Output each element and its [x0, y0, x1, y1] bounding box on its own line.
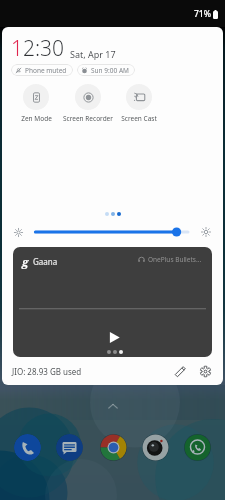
staticText: 2:30: [23, 34, 65, 63]
staticText: JIO: 28.93 GB used: [12, 366, 82, 377]
staticText: OnePlus Bullets...: [148, 255, 202, 264]
staticText: 71%: [194, 8, 211, 20]
button[interactable]: Zen Mode: [10, 84, 62, 123]
button[interactable]: Phone muted: [11, 64, 73, 76]
staticText: g: [22, 254, 29, 269]
staticText: 1: [11, 34, 23, 63]
staticText: Gaana: [33, 256, 58, 267]
button[interactable]: Phone: [14, 434, 41, 461]
button[interactable]: Screen Cast: [113, 84, 164, 123]
button[interactable]: WhatsApp: [184, 434, 211, 461]
button[interactable]: Camera: [142, 434, 169, 461]
button[interactable]: Brightness: [2, 224, 223, 240]
button[interactable]: Screen Recorder: [62, 84, 113, 123]
button[interactable]: Messages: [56, 434, 83, 461]
staticText: Sun 9:00 AM: [91, 66, 129, 75]
button[interactable]: Play: [104, 327, 124, 347]
button[interactable]: Sun 9:00 AM: [77, 64, 135, 76]
staticText: Zen Mode: [21, 114, 52, 123]
staticText: Screen Cast: [121, 114, 157, 123]
staticText: Phone muted: [25, 66, 67, 75]
staticText: Screen Recorder: [63, 114, 113, 123]
staticText: Sat, Apr 17: [70, 48, 116, 60]
button[interactable]: Edit: [172, 363, 188, 379]
button[interactable]: Settings: [197, 363, 213, 379]
button[interactable]: Chrome: [100, 434, 127, 461]
